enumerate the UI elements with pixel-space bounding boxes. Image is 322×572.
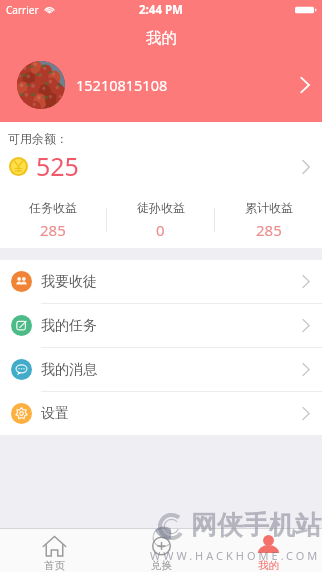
staticText: 首页 <box>44 559 65 572</box>
button[interactable]: 15210815108 <box>0 48 322 122</box>
staticText: 0 <box>156 220 165 240</box>
staticText: 我的 <box>146 28 177 48</box>
button[interactable]: 我要收徒 <box>0 260 322 303</box>
button[interactable]: 徒孙收益 <box>107 192 214 248</box>
staticText: Carrier <box>6 3 39 17</box>
button[interactable]: 兑换 <box>108 529 215 572</box>
staticText: 设置 <box>41 405 69 423</box>
button[interactable]: 我的 <box>215 529 322 572</box>
staticText: WWW.HACKHOME.COM <box>150 548 321 563</box>
staticText: 我要收徒 <box>41 273 97 291</box>
staticText: 徒孙收益 <box>137 200 185 215</box>
staticText: 2:44 PM <box>139 2 183 18</box>
staticText: 我的 <box>258 559 279 572</box>
button[interactable]: 我的消息 <box>0 348 322 391</box>
staticText: 任务收益 <box>29 200 77 215</box>
staticText: 我的任务 <box>41 317 97 335</box>
staticText: 可用余额： <box>8 131 68 146</box>
staticText: 网侠手机站 <box>191 509 321 542</box>
staticText: 我的消息 <box>41 361 97 379</box>
staticText: 285 <box>40 220 66 240</box>
button[interactable]: 设置 <box>0 392 322 435</box>
staticText: 525 <box>36 149 79 183</box>
button[interactable]: 可用余额： <box>0 122 322 192</box>
staticText: 累计收益 <box>245 200 293 215</box>
button[interactable]: 任务收益 <box>0 192 106 248</box>
button[interactable]: 累计收益 <box>215 192 322 248</box>
button[interactable]: 首页 <box>0 529 108 572</box>
staticText: 285 <box>256 220 282 240</box>
button[interactable]: 我的任务 <box>0 304 322 347</box>
staticText: 15210815108 <box>76 75 168 95</box>
staticText: 兑换 <box>151 559 172 572</box>
